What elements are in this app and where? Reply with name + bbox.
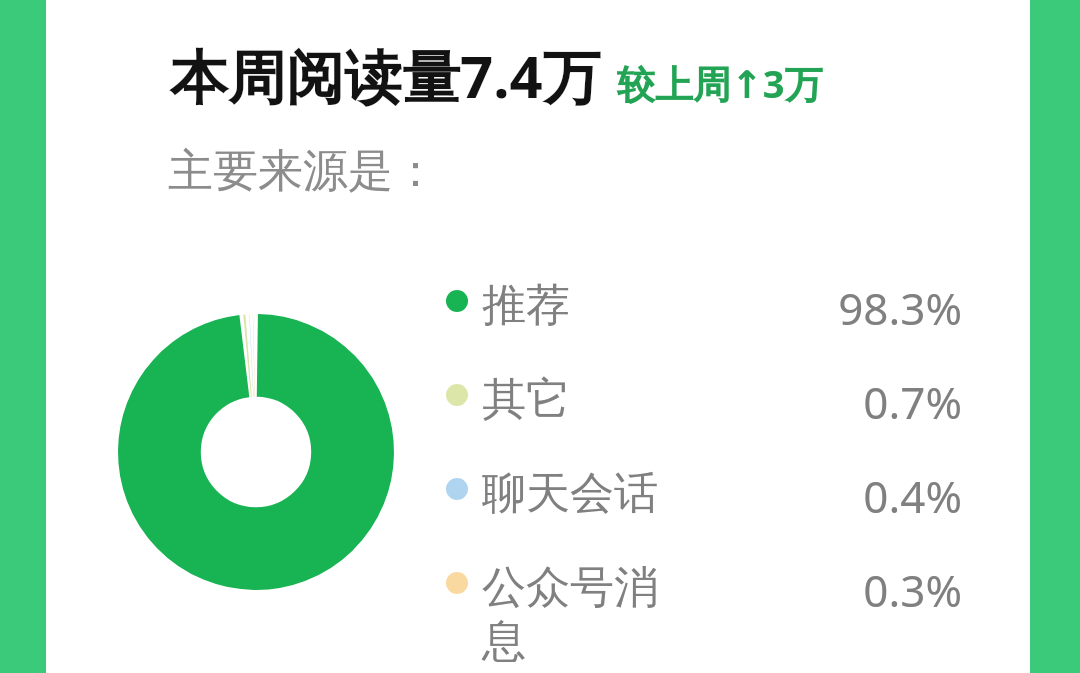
button[interactable]: 阅读来源占比环形图 [118, 314, 394, 590]
button[interactable]: 其它 [446, 372, 962, 432]
button[interactable]: 公众号消息 [446, 560, 962, 669]
staticText: 0.4% [668, 466, 962, 526]
button[interactable]: 聊天会话 [446, 466, 962, 526]
button[interactable]: 主要来源是： [168, 143, 438, 200]
staticText: 较上周↑3万 [617, 57, 823, 109]
staticText: 本周阅读量7.4万 [170, 36, 601, 115]
staticText: 0.3% [668, 560, 962, 620]
staticText: 其它 [482, 372, 668, 427]
staticText: 推荐 [482, 278, 668, 333]
staticText: 98.3% [668, 278, 962, 338]
staticText: 0.7% [668, 372, 962, 432]
staticText: 公众号消息 [482, 560, 668, 669]
button[interactable]: 本周阅读量7.4万 [170, 36, 1030, 115]
button[interactable]: 推荐 [446, 278, 962, 338]
staticText: 聊天会话 [482, 466, 668, 521]
